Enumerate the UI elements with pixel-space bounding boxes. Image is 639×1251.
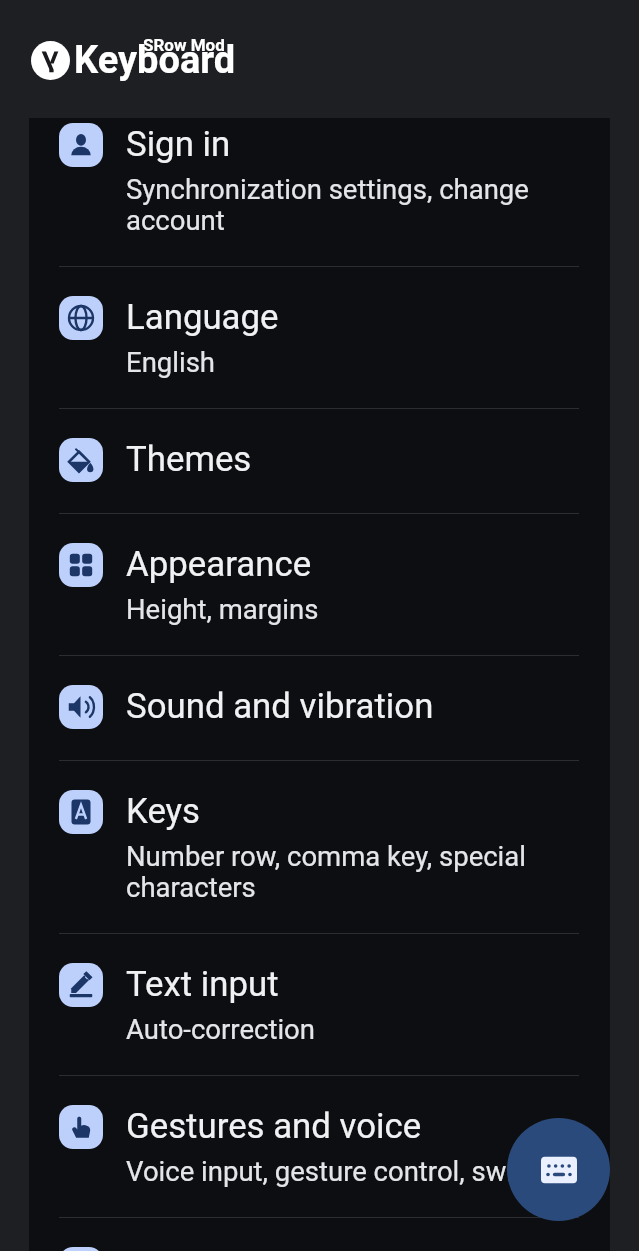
staticText: Gestures and voice: [126, 1106, 422, 1147]
button[interactable]: Open keyboard: [507, 1118, 610, 1221]
staticText: Text input: [126, 964, 279, 1005]
button[interactable]: Sound and vibration: [29, 656, 610, 760]
staticText: Keyboard: [74, 38, 236, 83]
button[interactable]: Themes: [29, 409, 610, 513]
staticText: Height, margins: [126, 593, 319, 625]
staticText: Number row, comma key, special character…: [126, 840, 580, 903]
staticText: Auto-correction: [126, 1013, 315, 1045]
other: Yandex: [31, 41, 70, 80]
staticText: Sound and vibration: [126, 686, 434, 727]
button[interactable]: Appearance: [29, 514, 610, 655]
staticText: Appearance: [126, 544, 312, 585]
button[interactable]: Text input: [29, 934, 610, 1075]
staticText: Language: [126, 297, 279, 338]
staticText: Sign in: [126, 124, 231, 165]
button[interactable]: Advanced: [29, 1218, 610, 1251]
button[interactable]: Gestures and voice: [29, 1076, 610, 1217]
button[interactable]: Sign in: [29, 94, 610, 266]
staticText: SRow Mod: [143, 35, 225, 55]
staticText: Voice input, gesture control, swipe: [126, 1155, 544, 1187]
staticText: Synchronization settings, change account: [126, 173, 580, 236]
button[interactable]: Keys: [29, 761, 610, 933]
button[interactable]: Language: [29, 267, 610, 408]
staticText: Keys: [126, 791, 201, 832]
staticText: English: [126, 346, 215, 378]
staticText: Themes: [126, 439, 252, 480]
